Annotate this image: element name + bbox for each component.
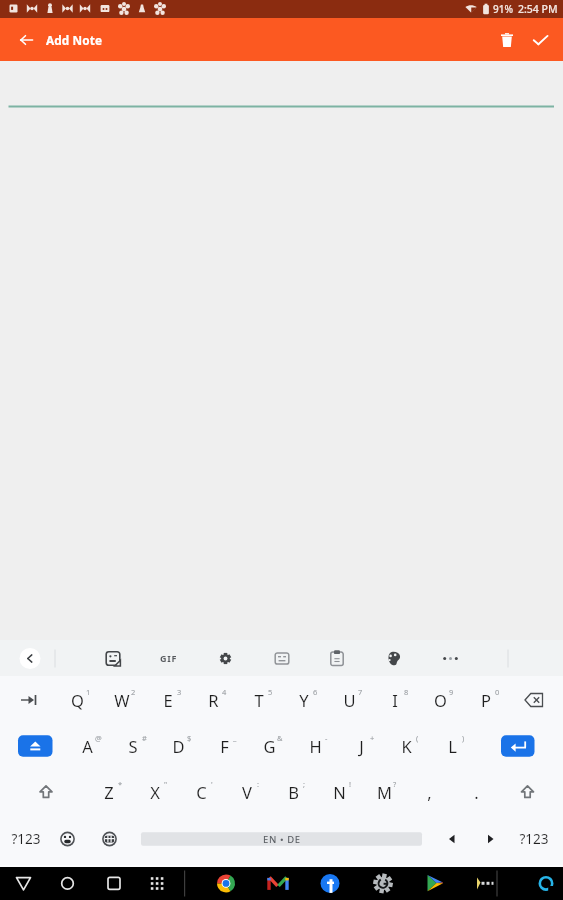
staticText: I xyxy=(392,689,398,711)
staticText: ! xyxy=(349,779,352,789)
button[interactable]: Settings xyxy=(168,640,224,676)
button[interactable]: O xyxy=(418,684,462,716)
button[interactable]: W xyxy=(100,684,144,716)
button[interactable]: Chrome xyxy=(223,867,275,900)
button[interactable]: V xyxy=(225,776,269,808)
button[interactable]: G xyxy=(247,730,291,762)
button[interactable]: M xyxy=(362,776,406,808)
button[interactable]: Delete xyxy=(496,18,518,61)
button[interactable]: Q xyxy=(55,684,99,716)
staticText: H xyxy=(309,735,322,757)
staticText: F xyxy=(220,735,229,757)
button[interactable]: Gmail xyxy=(275,867,327,900)
button[interactable]: . xyxy=(454,776,498,808)
button[interactable]: , xyxy=(407,776,451,808)
button[interactable]: Back xyxy=(0,640,56,676)
staticText: ? xyxy=(393,779,397,789)
button[interactable]: Facebook xyxy=(327,867,379,900)
button[interactable]: L xyxy=(430,730,474,762)
staticText: L xyxy=(448,735,457,757)
button[interactable]: Z xyxy=(87,776,131,808)
button[interactable]: A xyxy=(65,730,109,762)
staticText: V xyxy=(242,781,252,803)
staticText: P xyxy=(481,689,491,711)
staticText: C xyxy=(196,781,207,803)
staticText: ) xyxy=(462,733,465,743)
button[interactable]: H xyxy=(293,730,337,762)
staticText: N xyxy=(333,781,346,803)
button[interactable]: J xyxy=(339,730,383,762)
button[interactable]: Home xyxy=(46,867,90,900)
button[interactable]: T xyxy=(237,684,281,716)
staticText: M xyxy=(377,781,392,803)
button[interactable]: ?123 xyxy=(512,823,556,855)
staticText: EN • DE xyxy=(263,833,301,846)
button[interactable]: Clipboard xyxy=(280,640,336,676)
button[interactable]: P xyxy=(464,684,508,716)
staticText: Y xyxy=(299,689,309,711)
staticText: _ xyxy=(233,733,237,743)
button[interactable]: ?123 xyxy=(4,823,48,855)
button[interactable]: X xyxy=(133,776,177,808)
staticText: ?123 xyxy=(519,830,549,848)
staticText: # xyxy=(142,733,147,743)
staticText: S xyxy=(128,735,138,757)
button[interactable]: App xyxy=(480,867,524,900)
staticText: A xyxy=(82,735,93,757)
staticText: 1 xyxy=(86,687,91,697)
button[interactable]: Back xyxy=(9,18,44,61)
staticText: . xyxy=(474,781,479,803)
button[interactable]: Save xyxy=(518,18,563,61)
button[interactable]: N xyxy=(317,776,361,808)
staticText: X xyxy=(150,781,160,803)
button[interactable]: Space xyxy=(141,828,422,850)
button[interactable]: R xyxy=(191,684,235,716)
button[interactable]: Themes xyxy=(336,640,392,676)
button[interactable]: D xyxy=(156,730,200,762)
button[interactable]: More xyxy=(392,640,448,676)
staticText: : xyxy=(257,779,260,789)
staticText: 91% xyxy=(493,2,513,16)
staticText: 7 xyxy=(358,687,363,697)
button[interactable]: Y xyxy=(282,684,326,716)
staticText: W xyxy=(114,689,130,711)
button[interactable]: Google xyxy=(379,867,431,900)
button[interactable]: Assistant xyxy=(524,867,563,900)
button[interactable]: U xyxy=(327,684,371,716)
button[interactable]: Stickers xyxy=(56,640,112,676)
staticText: 9 xyxy=(449,687,454,697)
staticText: ( xyxy=(416,733,419,743)
button[interactable]: F xyxy=(202,730,246,762)
staticText: Q xyxy=(71,689,84,711)
staticText: 6 xyxy=(313,687,318,697)
staticText: 3 xyxy=(177,687,182,697)
staticText: ?123 xyxy=(11,830,41,848)
staticText: & xyxy=(277,733,283,743)
staticText: D xyxy=(172,735,185,757)
staticText: 8 xyxy=(404,687,409,697)
staticText: 0 xyxy=(495,687,500,697)
staticText: B xyxy=(288,781,299,803)
staticText: E xyxy=(163,689,173,711)
button[interactable]: Play Store xyxy=(431,867,480,900)
button[interactable]: I xyxy=(373,684,417,716)
button[interactable]: E xyxy=(146,684,190,716)
button[interactable]: Recent apps xyxy=(90,867,134,900)
button[interactable]: K xyxy=(384,730,428,762)
button[interactable]: Keyboard modes xyxy=(224,640,280,676)
staticText: , xyxy=(427,781,432,803)
staticText: 2 xyxy=(131,687,136,697)
staticText: R xyxy=(208,689,219,711)
staticText: GIF xyxy=(160,652,178,664)
button[interactable]: B xyxy=(271,776,315,808)
button[interactable]: C xyxy=(179,776,223,808)
staticText: O xyxy=(434,689,447,711)
staticText: J xyxy=(359,735,364,757)
staticText: Z xyxy=(104,781,114,803)
button[interactable]: All apps xyxy=(134,867,178,900)
button[interactable]: S xyxy=(111,730,155,762)
button[interactable]: Back xyxy=(0,867,46,900)
staticText: " xyxy=(164,779,168,789)
button[interactable]: GIF xyxy=(112,640,168,676)
staticText: G xyxy=(263,735,276,757)
